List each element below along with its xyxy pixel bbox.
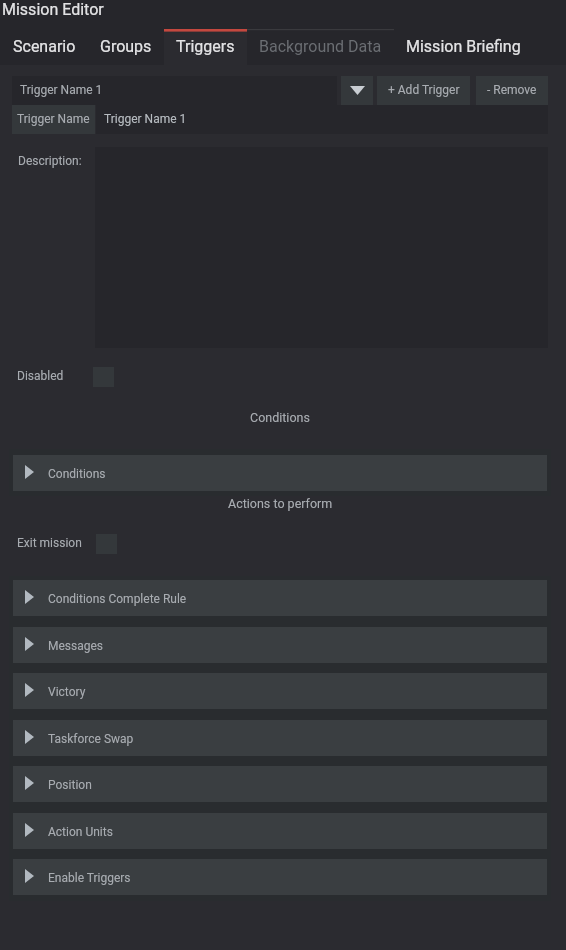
button[interactable]: - Remove	[476, 76, 548, 105]
staticText: Scenario	[13, 37, 76, 56]
staticText: Conditions	[250, 410, 310, 425]
staticText: Mission Editor	[2, 0, 104, 19]
button[interactable]: Groups	[88, 29, 164, 65]
button[interactable]: Trigger Name 1	[96, 105, 548, 134]
staticText: - Remove	[487, 83, 537, 97]
button[interactable]: Taskforce Swap	[13, 720, 547, 756]
button[interactable]: Scenario	[1, 29, 88, 65]
staticText: Messages	[48, 639, 104, 653]
button[interactable]: Trigger Name	[12, 105, 95, 134]
staticText: Groups	[100, 37, 152, 56]
staticText: Taskforce Swap	[48, 732, 134, 746]
button[interactable]: Select trigger	[341, 76, 373, 105]
staticText: Trigger Name 1	[104, 112, 187, 126]
button[interactable]: Messages	[13, 627, 547, 663]
staticText: Disabled	[17, 369, 64, 383]
staticText: Action Units	[48, 825, 113, 839]
button[interactable]: Background Data	[247, 29, 394, 65]
staticText: Actions to perform	[228, 496, 333, 511]
button[interactable]: Mission Briefing	[394, 29, 533, 65]
button[interactable]: Triggers	[164, 29, 247, 65]
button[interactable]: Victory	[13, 673, 547, 709]
staticText: Position	[48, 778, 92, 792]
staticText: Victory	[48, 685, 86, 699]
button[interactable]: Action Units	[13, 813, 547, 849]
staticText: Exit mission	[17, 536, 82, 550]
staticText: Enable Triggers	[48, 871, 131, 885]
staticText: Conditions	[48, 467, 106, 481]
button[interactable]: Conditions Complete Rule	[13, 580, 547, 616]
button[interactable]: Conditions	[13, 455, 547, 491]
staticText: Trigger Name 1	[20, 83, 103, 97]
button[interactable]: + Add Trigger	[377, 76, 470, 105]
staticText: Background Data	[259, 37, 382, 56]
staticText: Conditions Complete Rule	[48, 592, 187, 606]
staticText: + Add Trigger	[388, 83, 460, 97]
staticText: Triggers	[176, 37, 235, 56]
staticText: Description:	[18, 154, 82, 168]
button[interactable]: Enable Triggers	[13, 859, 547, 895]
button[interactable]: Position	[13, 766, 547, 802]
staticText: Trigger Name	[17, 112, 90, 126]
button[interactable]: Trigger Name 1	[12, 76, 337, 105]
staticText: Mission Briefing	[406, 37, 521, 56]
